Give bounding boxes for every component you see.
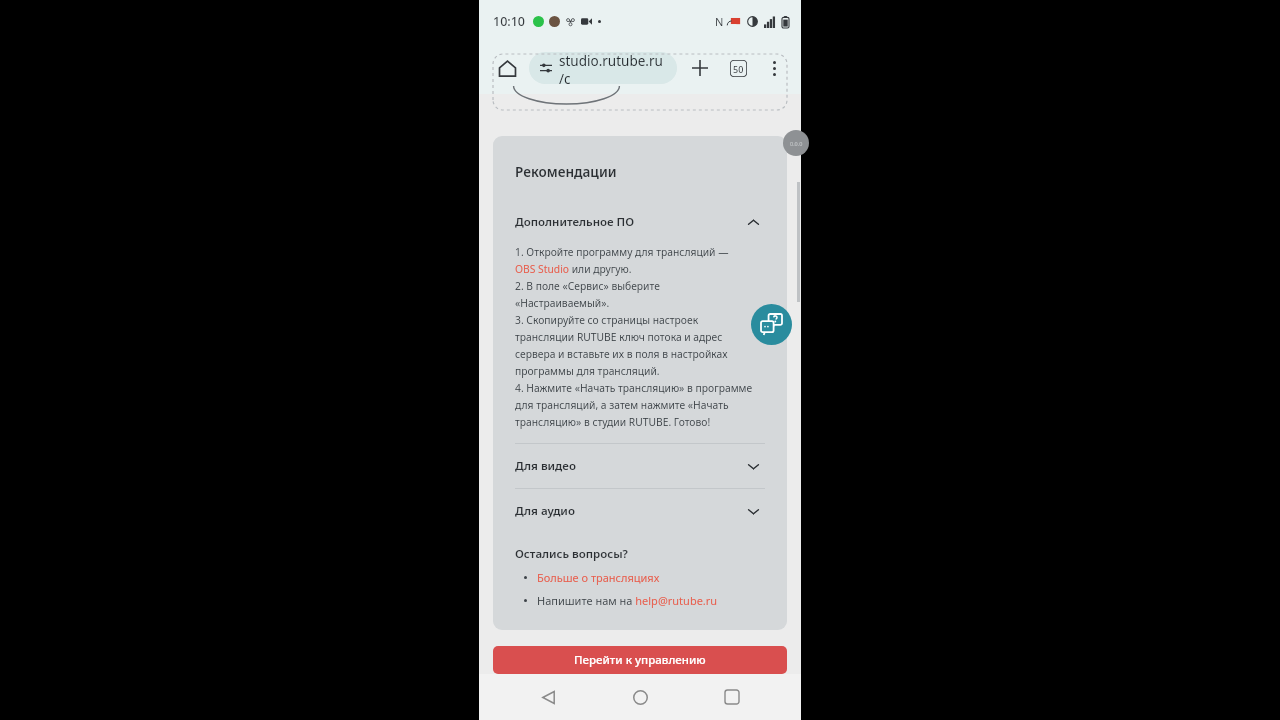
button[interactable]: Дополнительное ПО — [515, 210, 765, 234]
button[interactable]: Home — [617, 674, 663, 720]
staticText: Для аудио — [515, 503, 575, 519]
staticText: 3. Скопируйте со страницы настроек — [515, 313, 699, 327]
button[interactable]: Перейти к управлению — [493, 646, 787, 674]
staticText: 4. Нажмите «Начать трансляцию» в програм… — [515, 381, 753, 395]
button[interactable]: Back — [525, 674, 571, 720]
other: Collapse — [741, 210, 765, 234]
staticText: 10:10 — [493, 13, 526, 30]
button[interactable]: Для видео — [515, 444, 765, 488]
button[interactable]: Home — [491, 52, 523, 84]
button[interactable]: Recent apps — [709, 674, 755, 720]
staticText: сервера и вставьте их в поля в настройка… — [515, 347, 728, 361]
staticText: «Настраиваемый». — [515, 296, 610, 310]
staticText: studio.rutube.ru/c — [559, 52, 666, 84]
staticText: 50 — [733, 63, 744, 75]
staticText: OBS Studio или другую. — [515, 262, 632, 276]
staticText: Для видео — [515, 458, 576, 474]
staticText: N — [715, 14, 724, 29]
staticText: Напишите нам на help@rutube.ru — [537, 593, 718, 608]
staticText: для трансляций, а затем нажмите «Начать — [515, 398, 729, 412]
staticText: Остались вопросы? — [515, 546, 628, 562]
button[interactable]: Support chat — [751, 304, 792, 345]
button[interactable]: Напишите нам на help@rutube.ru — [537, 593, 718, 608]
button[interactable]: studio.rutube.ru/c — [529, 52, 677, 84]
staticText: Рекомендации — [515, 163, 617, 181]
other: Expand — [741, 454, 765, 478]
staticText: трансляцию» в студии RUTUBE. Готово! — [515, 415, 711, 429]
staticText: Больше о трансляциях — [537, 570, 660, 585]
staticText: трансляции RUTUBE ключ потока и адрес — [515, 330, 723, 344]
staticText: 1. Откройте программу для трансляций — — [515, 245, 729, 259]
button[interactable]: New tab — [685, 53, 715, 83]
button[interactable]: More options — [759, 53, 789, 83]
staticText: 2. В поле «Сервис» выберите — [515, 279, 660, 293]
staticText: 0.0.0 — [790, 140, 803, 147]
staticText: Перейти к управлению — [574, 652, 706, 668]
staticText: Дополнительное ПО — [515, 214, 635, 230]
other: Expand — [741, 499, 765, 523]
button[interactable]: Tabs — [723, 53, 753, 83]
staticText: программы для трансляций. — [515, 364, 660, 378]
button[interactable]: Больше о трансляциях — [537, 570, 660, 585]
button[interactable]: Для аудио — [515, 489, 765, 533]
